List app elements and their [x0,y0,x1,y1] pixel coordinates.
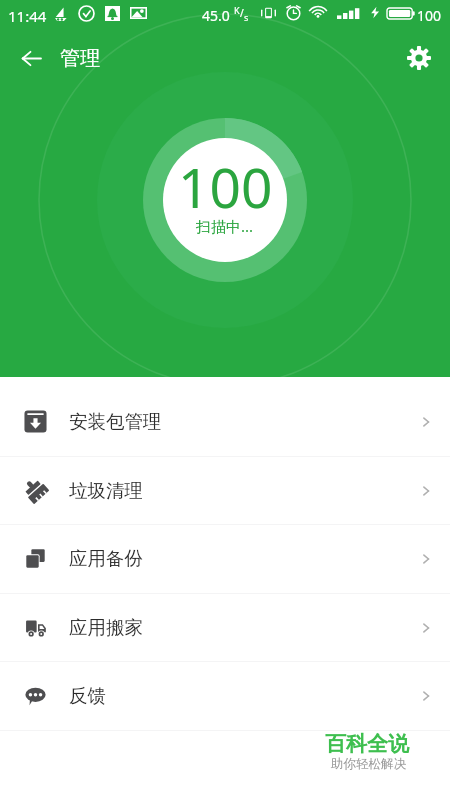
button[interactable]: 反馈 [0,661,450,730]
staticText: 助你轻松解决 [331,756,406,772]
button[interactable]: Back [6,28,56,88]
staticText: 反馈 [69,684,106,707]
staticText: K [234,4,240,16]
staticText: 100 [178,149,273,224]
staticText: / [240,6,244,20]
staticText: 45.0 [202,6,230,25]
button[interactable]: 应用备份 [0,524,450,593]
button[interactable]: 应用搬家 [0,593,450,662]
staticText: 百科全说 [325,731,409,757]
button[interactable]: 安装包管理 [0,387,450,456]
staticText: 安装包管理 [69,410,162,433]
staticText: 垃圾清理 [69,479,143,502]
staticText: 11:44 [8,6,47,26]
staticText: 100 [417,6,442,25]
staticText: 管理 [60,46,100,71]
staticText: 应用备份 [69,547,143,570]
button[interactable]: Settings [394,28,444,88]
staticText: 扫描中... [196,216,254,236]
staticText: s [244,11,249,23]
button[interactable]: 垃圾清理 [0,456,450,525]
staticText: 应用搬家 [69,616,143,639]
